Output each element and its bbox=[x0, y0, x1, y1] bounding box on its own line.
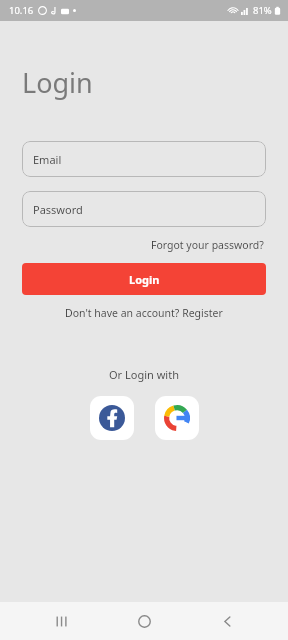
button[interactable]: Login with Facebook bbox=[90, 396, 134, 440]
button[interactable]: Don't have an account? Register bbox=[62, 303, 226, 323]
staticText: Forgot your password? bbox=[151, 238, 264, 252]
button[interactable]: Home bbox=[122, 602, 166, 640]
button[interactable]: Forgot your password? bbox=[149, 236, 266, 254]
staticText: Email bbox=[33, 152, 62, 167]
button[interactable]: Login with Google bbox=[155, 396, 199, 440]
staticText: Login bbox=[129, 272, 160, 287]
staticText: Or Login with bbox=[109, 367, 179, 382]
staticText: Don't have an account? Register bbox=[65, 306, 223, 320]
button[interactable]: Back bbox=[205, 602, 249, 640]
button[interactable]: Email bbox=[22, 141, 266, 177]
button[interactable]: Login bbox=[22, 263, 266, 295]
staticText: Login bbox=[22, 64, 93, 101]
staticText: Password bbox=[33, 202, 83, 217]
staticText: 81% bbox=[253, 4, 272, 17]
staticText: 10.16 bbox=[9, 4, 34, 17]
button[interactable]: Password bbox=[22, 191, 266, 227]
button[interactable]: Recent apps bbox=[39, 602, 83, 640]
